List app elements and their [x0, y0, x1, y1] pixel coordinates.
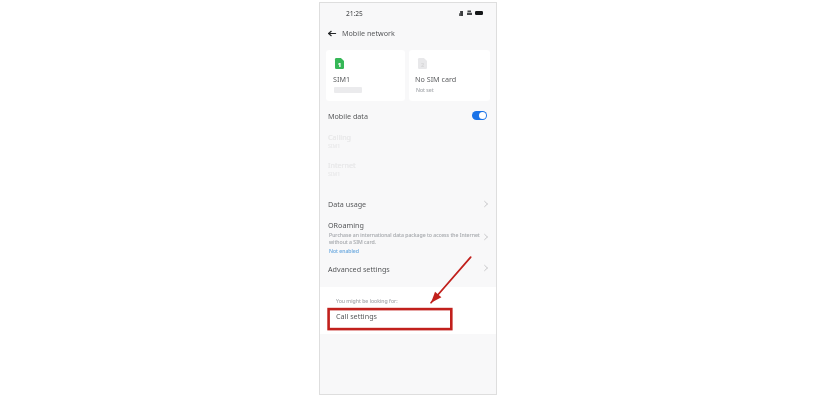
- staticText: Call settings: [336, 311, 377, 321]
- button[interactable]: Data usage: [319, 190, 497, 214]
- staticText: You might be looking for:: [336, 297, 398, 304]
- staticText: Advanced settings: [328, 264, 390, 274]
- button[interactable]: 2: [409, 50, 490, 101]
- staticText: Not set: [416, 86, 434, 93]
- button[interactable]: Advanced settings: [319, 259, 497, 283]
- button[interactable]: 1: [326, 50, 405, 101]
- button[interactable]: Back: [324, 26, 339, 41]
- staticText: Mobile data: [328, 111, 368, 121]
- staticText: SIM1: [328, 142, 341, 149]
- staticText: Not enabled: [329, 247, 359, 254]
- staticText: ORoaming: [328, 220, 364, 230]
- staticText: Purchase an international data package t…: [329, 231, 480, 245]
- staticText: 1: [338, 61, 342, 68]
- staticText: Calling: [328, 132, 352, 142]
- staticText: Mobile network: [342, 28, 395, 38]
- button[interactable]: ORoaming: [319, 214, 497, 259]
- button[interactable]: Call settings: [319, 309, 497, 334]
- staticText: SIM1: [333, 74, 351, 84]
- staticText: No SIM card: [415, 74, 457, 84]
- button[interactable]: Mobile data: [319, 104, 497, 129]
- staticText: Data usage: [328, 199, 367, 209]
- staticText: 2: [421, 61, 425, 68]
- staticText: 21:25: [346, 9, 363, 18]
- staticText: SIM1: [328, 170, 341, 177]
- staticText: Internet: [328, 160, 356, 170]
